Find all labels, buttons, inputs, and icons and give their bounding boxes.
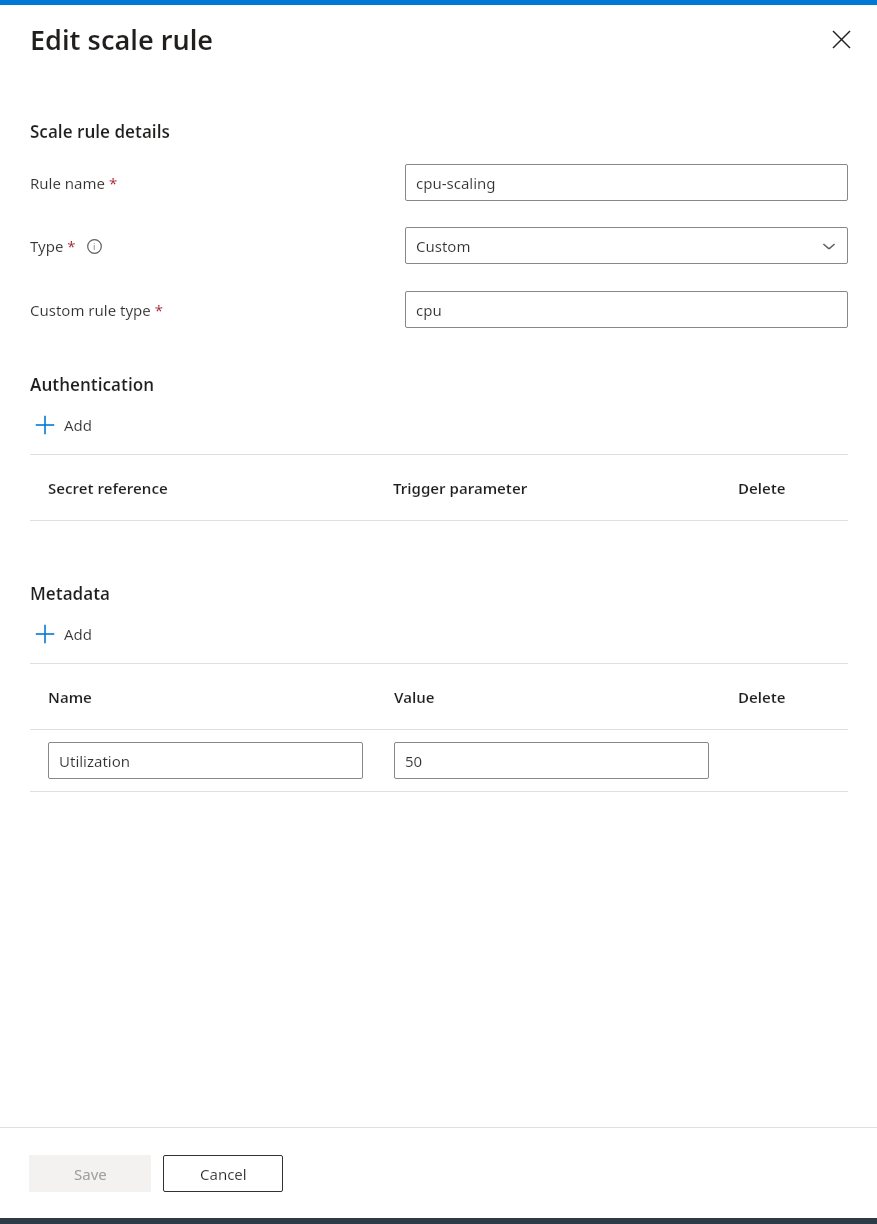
staticText: Rule name * — [30, 173, 118, 193]
staticText: Secret reference — [48, 478, 393, 498]
staticText: Edit scale rule — [30, 21, 214, 58]
staticText: 50 — [405, 751, 423, 771]
button[interactable]: 50 — [394, 742, 709, 779]
button[interactable]: cpu — [405, 291, 848, 328]
staticText: Utilization — [59, 751, 131, 771]
button[interactable]: Information about Type — [84, 236, 104, 256]
staticText: Add — [64, 624, 93, 644]
button[interactable]: cpu-scaling — [405, 164, 848, 201]
staticText: Trigger parameter — [393, 478, 738, 498]
staticText: Metadata — [30, 582, 111, 605]
button[interactable]: Add — [32, 619, 95, 649]
staticText: Type * — [30, 236, 76, 256]
staticText: Save — [74, 1164, 107, 1184]
staticText: Delete — [738, 687, 848, 707]
staticText: Scale rule details — [30, 120, 170, 143]
button[interactable]: Custom — [405, 227, 848, 264]
staticText: Authentication — [30, 373, 155, 396]
button[interactable]: Utilization — [48, 742, 363, 779]
staticText: Delete — [738, 478, 848, 498]
staticText: Custom — [416, 236, 471, 256]
staticText: Custom rule type * — [30, 300, 163, 320]
staticText: i — [93, 240, 96, 252]
staticText: Add — [64, 415, 93, 435]
staticText: Name — [48, 687, 394, 707]
button[interactable]: Add — [32, 410, 95, 440]
staticText: cpu-scaling — [416, 173, 496, 193]
button[interactable]: Cancel — [163, 1155, 283, 1192]
staticText: Cancel — [200, 1164, 247, 1184]
button[interactable]: Save — [29, 1155, 151, 1192]
staticText: cpu — [416, 300, 442, 320]
button[interactable]: Close — [823, 21, 859, 57]
staticText: Value — [394, 687, 738, 707]
